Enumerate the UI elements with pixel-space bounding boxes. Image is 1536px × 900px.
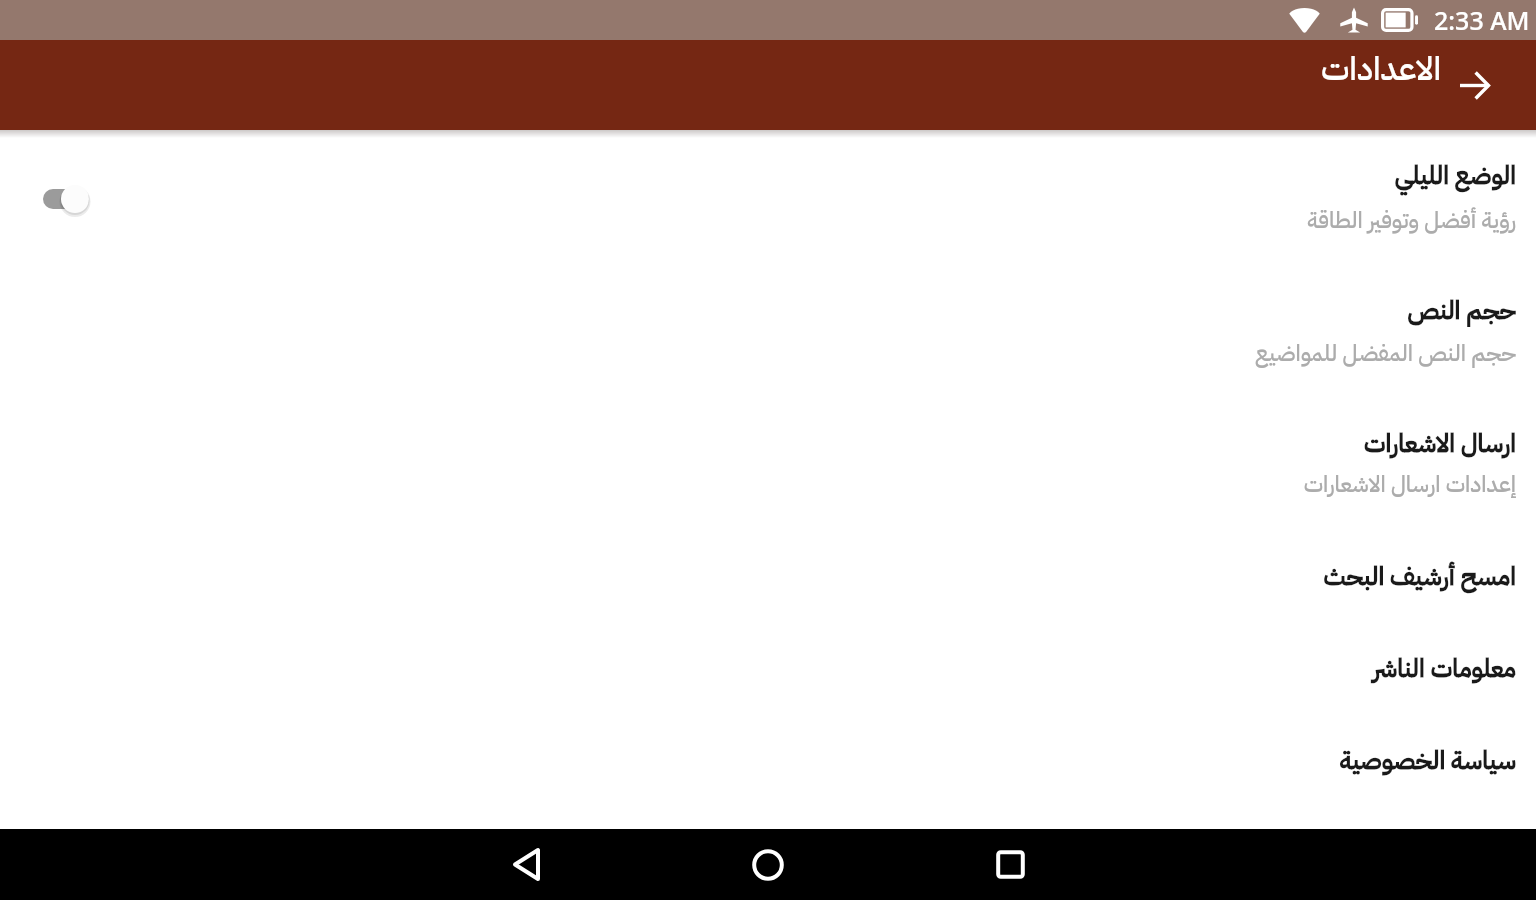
staticText: حجم النص bbox=[24, 292, 1516, 330]
staticText: إعدادات ارسال الاشعارات bbox=[24, 468, 1516, 502]
staticText: رؤية أفضل وتوفير الطاقة bbox=[24, 204, 1516, 238]
staticText: ارسال الاشعارات bbox=[24, 425, 1516, 463]
staticText: سياسة الخصوصية bbox=[24, 742, 1516, 780]
button[interactable]: Home bbox=[647, 829, 889, 900]
button[interactable]: Back bbox=[1447, 57, 1503, 113]
staticText: حجم النص المفضل للمواضيع bbox=[24, 337, 1516, 371]
button[interactable]: معلومات الناشر bbox=[0, 608, 1536, 699]
button[interactable]: امسح أرشيف البحث bbox=[0, 512, 1536, 608]
button[interactable]: ارسال الاشعارات bbox=[0, 383, 1536, 512]
button[interactable]: Recents bbox=[889, 829, 1131, 900]
button[interactable]: الوضع الليلي bbox=[0, 130, 1536, 250]
staticText: معلومات الناشر bbox=[24, 650, 1516, 688]
button[interactable]: حجم النص bbox=[0, 250, 1536, 383]
staticText: الوضع الليلي bbox=[24, 157, 1516, 195]
button[interactable]: Night mode toggle bbox=[19, 171, 103, 227]
staticText: الاعدادات bbox=[1321, 44, 1442, 94]
staticText: امسح أرشيف البحث bbox=[24, 558, 1516, 596]
button[interactable]: سياسة الخصوصية bbox=[0, 699, 1536, 790]
staticText: 2:33 AM bbox=[1434, 3, 1530, 37]
button[interactable]: Back bbox=[405, 829, 647, 900]
